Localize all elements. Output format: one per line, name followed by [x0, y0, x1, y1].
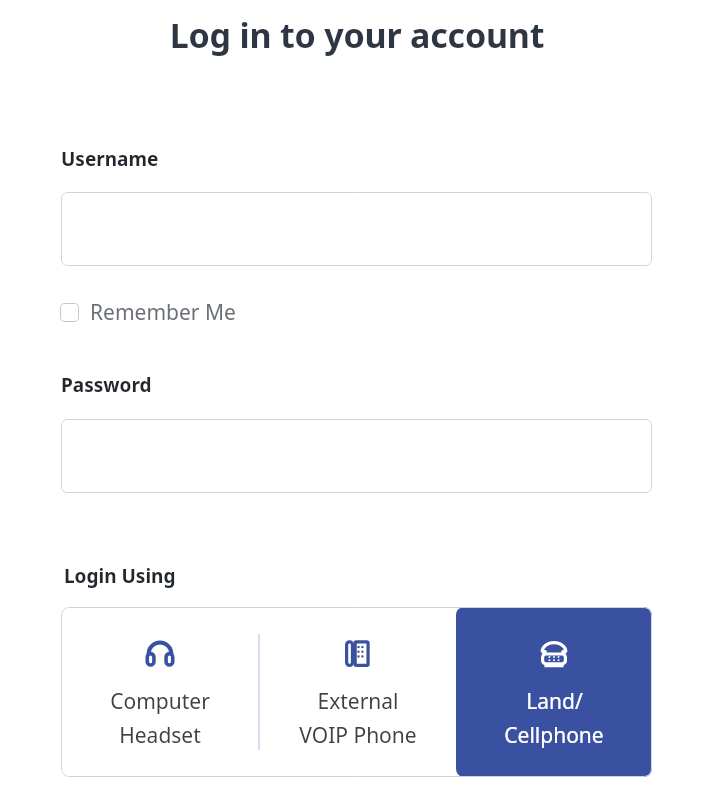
button[interactable]: Computer Headset: [61, 607, 258, 777]
staticText: External: [317, 687, 399, 716]
staticText: Remember Me: [90, 298, 236, 327]
staticText: Login Using: [64, 563, 176, 589]
staticText: Password: [61, 372, 152, 398]
button[interactable]: Land or Cellphone: [456, 607, 652, 777]
button[interactable]: [61, 192, 652, 266]
staticText: Cellphone: [504, 721, 604, 750]
button[interactable]: External VOIP Phone: [260, 607, 456, 777]
staticText: VOIP Phone: [299, 721, 417, 750]
staticText: Headset: [119, 721, 201, 750]
staticText: Username: [61, 146, 159, 172]
staticText: Log in to your account: [0, 12, 714, 58]
button[interactable]: Remember Me: [60, 298, 236, 327]
staticText: Land/: [526, 687, 583, 716]
staticText: Computer: [110, 687, 210, 716]
button[interactable]: [61, 419, 652, 493]
